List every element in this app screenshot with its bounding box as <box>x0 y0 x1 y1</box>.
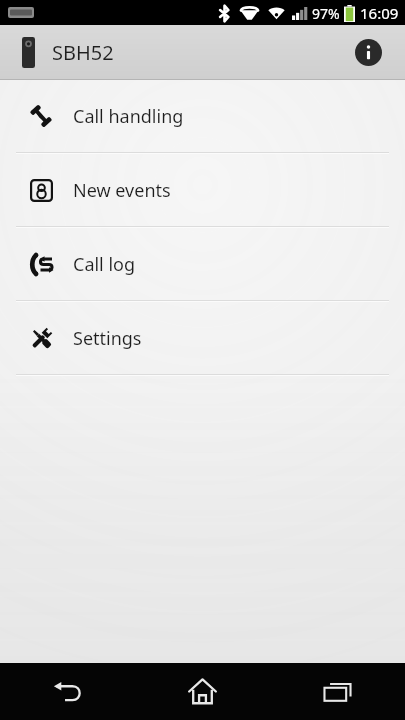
staticText: SBH52 <box>52 39 114 66</box>
button[interactable]: Call log <box>0 228 405 300</box>
button[interactable]: Recents <box>270 663 405 720</box>
staticText: New events <box>73 178 171 203</box>
staticText: Settings <box>73 326 142 351</box>
staticText: 16:09 <box>360 3 399 23</box>
button[interactable]: New events <box>0 154 405 226</box>
button[interactable]: Home <box>135 663 270 720</box>
button[interactable]: Call handling <box>0 80 405 152</box>
staticText: Call log <box>73 252 136 277</box>
staticText: 97% <box>312 4 340 23</box>
staticText: Call handling <box>73 104 184 129</box>
button[interactable]: Settings <box>0 302 405 374</box>
button[interactable]: Info <box>345 29 391 75</box>
button[interactable]: Back <box>0 663 135 720</box>
